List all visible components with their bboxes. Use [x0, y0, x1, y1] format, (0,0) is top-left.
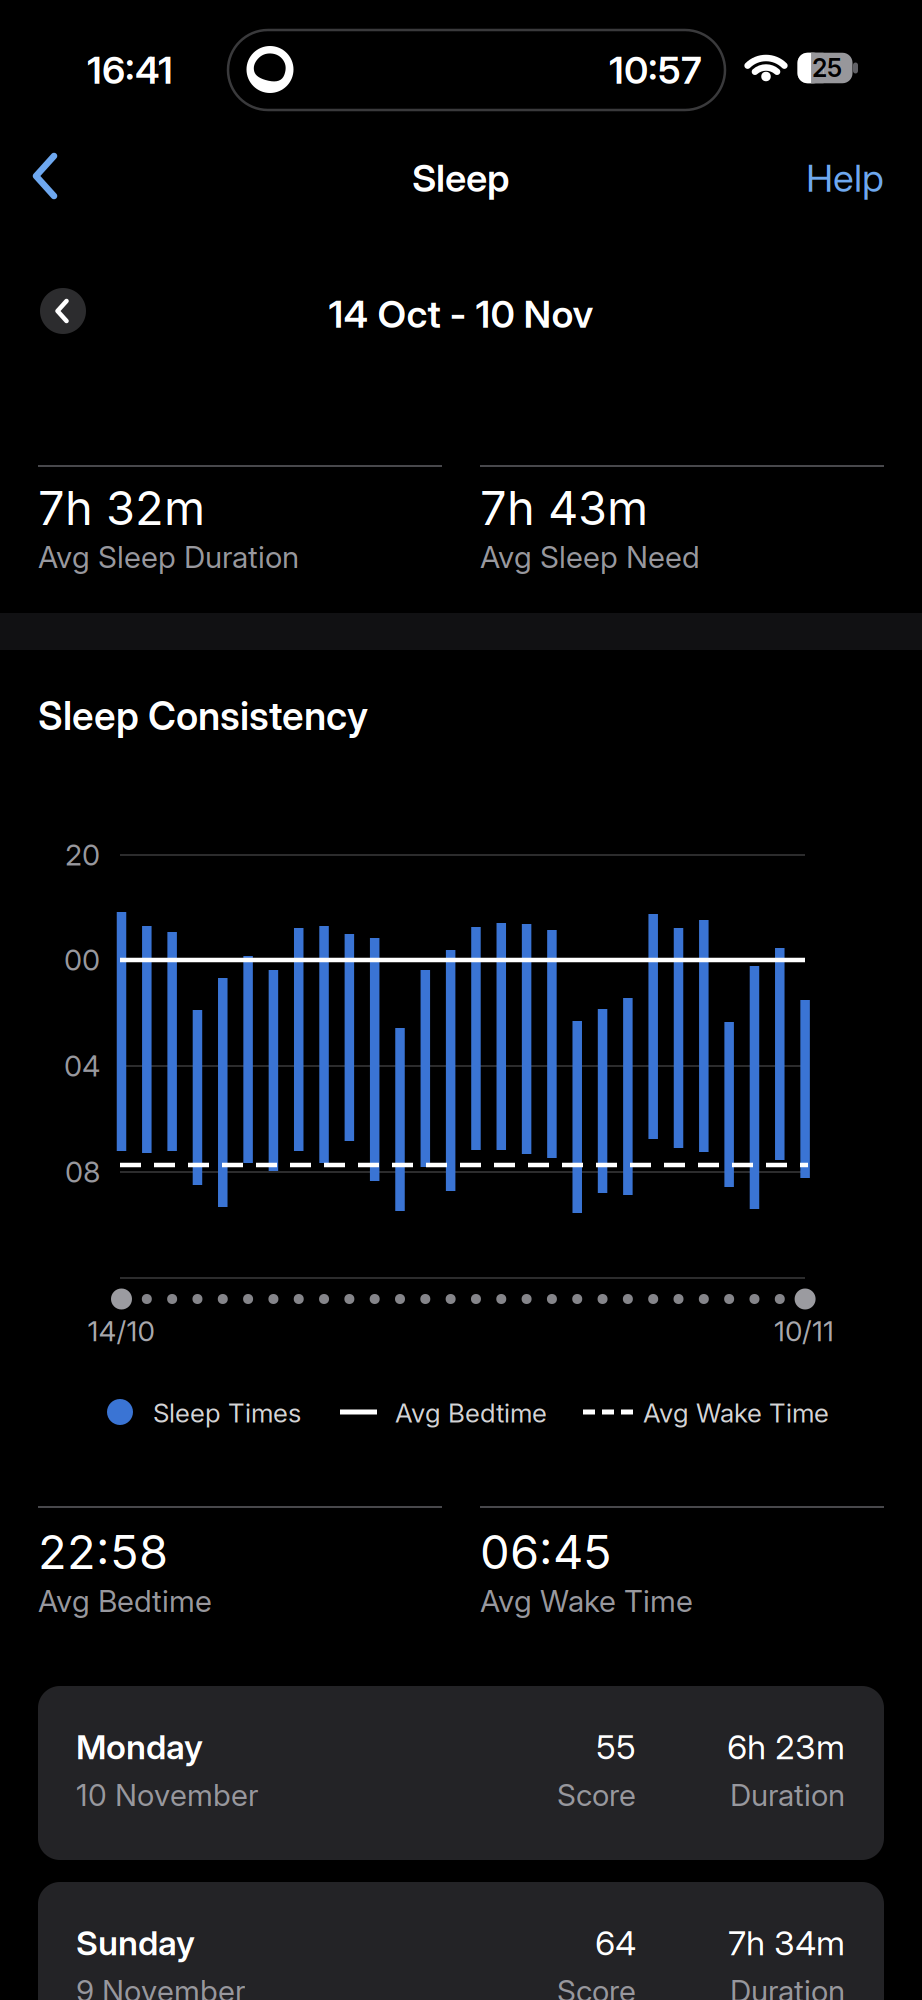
- staticText: 10/11: [774, 1314, 834, 1348]
- staticText: 20: [65, 837, 100, 873]
- staticText: Duration: [730, 1973, 845, 2000]
- staticText: 64: [595, 1922, 636, 1963]
- staticText: Monday: [76, 1726, 203, 1767]
- staticText: Avg Sleep Need: [480, 539, 700, 575]
- button[interactable]: [40, 288, 86, 334]
- staticText: 25: [812, 53, 842, 83]
- staticText: 9 November: [76, 1973, 246, 2000]
- staticText: 06:45: [480, 1524, 612, 1580]
- staticText: Sunday: [76, 1922, 195, 1963]
- staticText: Avg Bedtime: [395, 1397, 547, 1429]
- staticText: Avg Wake Time: [643, 1397, 829, 1429]
- staticText: Duration: [730, 1777, 845, 1813]
- staticText: Score: [557, 1777, 636, 1813]
- staticText: Help: [806, 155, 884, 201]
- staticText: 14/10: [87, 1314, 154, 1348]
- staticText: Sleep Times: [153, 1397, 301, 1429]
- staticText: 6h 23m: [727, 1726, 845, 1767]
- staticText: 04: [64, 1048, 100, 1084]
- staticText: 10:57: [609, 47, 702, 93]
- staticText: 7h 32m: [38, 480, 205, 536]
- staticText: 16:41: [87, 47, 173, 93]
- staticText: Avg Wake Time: [480, 1583, 693, 1619]
- staticText: Sleep: [412, 155, 510, 201]
- staticText: 7h 43m: [480, 480, 648, 536]
- staticText: 00: [64, 942, 100, 978]
- staticText: 14 Oct - 10 Nov: [328, 291, 593, 337]
- staticText: 10 November: [76, 1777, 259, 1813]
- staticText: Avg Bedtime: [38, 1583, 212, 1619]
- button[interactable]: Help: [764, 155, 884, 201]
- button[interactable]: Monday: [0, 0, 922, 2000]
- button[interactable]: [23, 144, 67, 208]
- staticText: 7h 34m: [728, 1922, 845, 1963]
- staticText: 08: [65, 1154, 100, 1190]
- staticText: 55: [596, 1726, 636, 1767]
- staticText: Score: [557, 1973, 636, 2000]
- button[interactable]: Sunday: [0, 0, 922, 2000]
- staticText: 22:58: [38, 1524, 168, 1580]
- staticText: Avg Sleep Duration: [38, 539, 299, 575]
- staticText: Sleep Consistency: [38, 693, 368, 739]
